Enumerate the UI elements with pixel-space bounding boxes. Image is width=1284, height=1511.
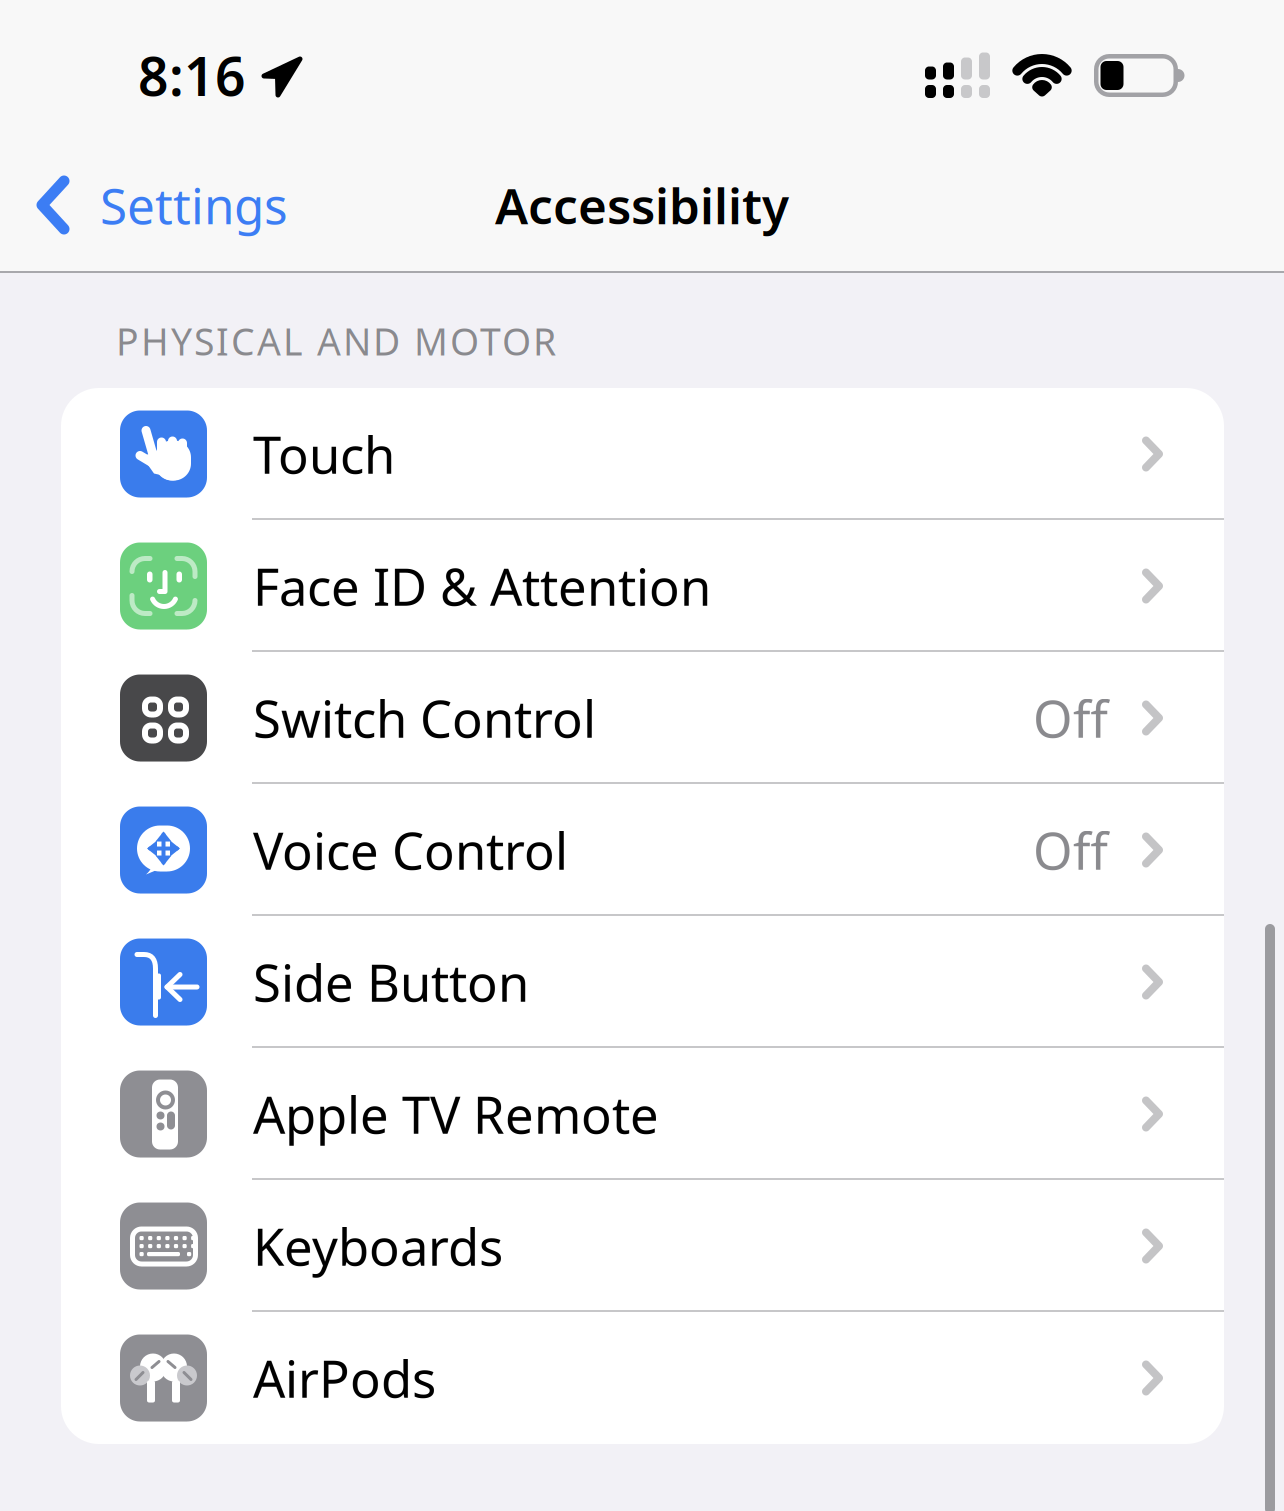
button[interactable]: Keyboards [61,1180,1224,1312]
staticText: Keyboards [253,1212,503,1280]
staticText: Apple TV Remote [253,1080,659,1148]
staticText: Switch Control [253,684,596,752]
staticText: Accessibility [495,172,789,238]
staticText: Touch [253,420,395,488]
staticText: 8:16 [138,40,246,111]
staticText: AirPods [253,1344,436,1412]
button[interactable]: Touch [61,388,1224,520]
button[interactable]: Switch Control [61,652,1224,784]
button[interactable]: Voice Control [61,784,1224,916]
button[interactable]: Face ID & Attention [61,520,1224,652]
staticText: PHYSICAL AND MOTOR [116,316,556,366]
button[interactable]: Settings [0,155,380,255]
button[interactable]: Side Button [61,916,1224,1048]
button[interactable]: AirPods [61,1312,1224,1444]
staticText: Voice Control [253,816,568,884]
staticText: Off [1033,816,1108,884]
staticText: Settings [100,172,288,238]
button[interactable]: Apple TV Remote [61,1048,1224,1180]
staticText: Face ID & Attention [253,552,711,620]
staticText: Off [1033,684,1108,752]
staticText: Side Button [253,948,529,1016]
